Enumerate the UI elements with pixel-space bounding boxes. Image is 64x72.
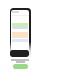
button[interactable] <box>12 23 28 27</box>
button[interactable]: Continue <box>13 64 28 69</box>
button[interactable]: Assistant message <box>10 50 29 57</box>
